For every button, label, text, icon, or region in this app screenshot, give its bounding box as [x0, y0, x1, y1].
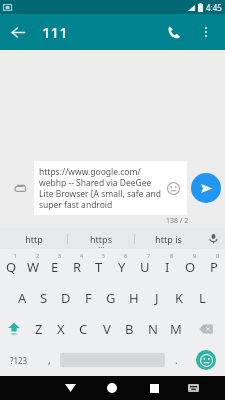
button[interactable]: M [164, 313, 187, 344]
button[interactable]: Shift [0, 313, 28, 344]
button[interactable]: https [68, 228, 134, 249]
button[interactable]: http [0, 228, 67, 249]
staticText: V [103, 320, 111, 338]
button[interactable]: A [11, 282, 33, 313]
button[interactable]: N [141, 313, 164, 344]
button[interactable]: Emoji keyboard [196, 350, 216, 370]
staticText: M [170, 320, 182, 338]
staticText: 9 [193, 252, 197, 259]
button[interactable]: ?123 [0, 344, 38, 376]
button[interactable]: Keyboard [175, 376, 212, 400]
staticText: E [51, 258, 59, 276]
button[interactable]: Q [0, 251, 22, 282]
button[interactable]: Attach [4, 173, 34, 203]
staticText: P [210, 258, 218, 276]
staticText: W [27, 258, 40, 276]
staticText: 111 [42, 22, 68, 42]
button[interactable]: , [38, 344, 60, 376]
button[interactable]: W [22, 251, 44, 282]
staticText: 0 [216, 252, 220, 259]
staticText: 1 [14, 252, 18, 259]
staticText: F [85, 289, 92, 307]
button[interactable]: More options [191, 17, 221, 47]
button[interactable]: Emoji [164, 179, 182, 197]
button[interactable]: https://www.google.com/webhp -- Shared v… [34, 161, 187, 215]
button[interactable]: T [88, 251, 110, 282]
staticText: 8 [170, 252, 174, 259]
staticText: . [175, 353, 178, 367]
staticText: , [48, 353, 51, 367]
staticText: I [165, 258, 170, 276]
staticText: S [40, 289, 48, 307]
staticText: J [155, 289, 159, 307]
staticText: R [73, 258, 82, 276]
staticText: O [185, 258, 196, 276]
button[interactable]: I [156, 251, 179, 282]
button[interactable]: O [179, 251, 202, 282]
button[interactable]: G [99, 282, 122, 313]
button[interactable]: Call [157, 15, 191, 49]
staticText: B [125, 320, 134, 338]
button[interactable]: C [72, 313, 95, 344]
staticText: Y [118, 258, 126, 276]
staticText: 2 [36, 252, 40, 259]
button[interactable]: Y [110, 251, 133, 282]
button[interactable]: V [95, 313, 118, 344]
staticText: 4:45 [206, 2, 222, 13]
staticText: N [148, 320, 158, 338]
staticText: 3 [58, 252, 62, 259]
button[interactable]: S [33, 282, 55, 313]
staticText: U [140, 258, 150, 276]
staticText: D [61, 289, 71, 307]
button[interactable]: K [168, 282, 191, 313]
button[interactable]: Voice input [201, 228, 225, 249]
staticText: X [57, 320, 65, 338]
staticText: G [106, 289, 116, 307]
staticText: T [95, 258, 103, 276]
staticText: Q [6, 258, 17, 276]
button[interactable]: Send [191, 173, 221, 203]
staticText: Z [35, 320, 43, 338]
staticText: 5 [102, 252, 106, 259]
button[interactable]: http is [135, 228, 201, 249]
staticText: H [129, 289, 139, 307]
staticText: ?123 [10, 355, 28, 366]
staticText: http [25, 233, 43, 245]
button[interactable]: Home [91, 376, 133, 400]
button[interactable]: Z [28, 313, 50, 344]
staticText: K [175, 289, 184, 307]
staticText: A [18, 289, 27, 307]
button[interactable]: Back [49, 376, 91, 400]
staticText: 7 [147, 252, 151, 259]
button[interactable]: Backspace [187, 313, 225, 344]
button[interactable]: Back [0, 14, 36, 50]
staticText: https://www.google.com/webhp -- Shared v… [39, 166, 161, 210]
button[interactable]: R [66, 251, 88, 282]
button[interactable]: J [145, 282, 168, 313]
button[interactable]: P [202, 251, 225, 282]
staticText: C [79, 320, 88, 338]
staticText: https [90, 233, 112, 245]
staticText: 4 [80, 252, 84, 259]
staticText: 6 [124, 252, 128, 259]
button[interactable]: H [122, 282, 145, 313]
button[interactable]: L [191, 282, 214, 313]
staticText: 138 / 2 [166, 216, 189, 226]
staticText: http is [155, 233, 182, 245]
staticText: L [199, 289, 206, 307]
button[interactable]: U [133, 251, 156, 282]
button[interactable]: Recents [133, 376, 175, 400]
button[interactable]: F [77, 282, 99, 313]
button[interactable]: D [55, 282, 77, 313]
button[interactable]: X [50, 313, 72, 344]
button[interactable]: . [165, 344, 187, 376]
button[interactable]: E [44, 251, 66, 282]
button[interactable]: B [118, 313, 141, 344]
